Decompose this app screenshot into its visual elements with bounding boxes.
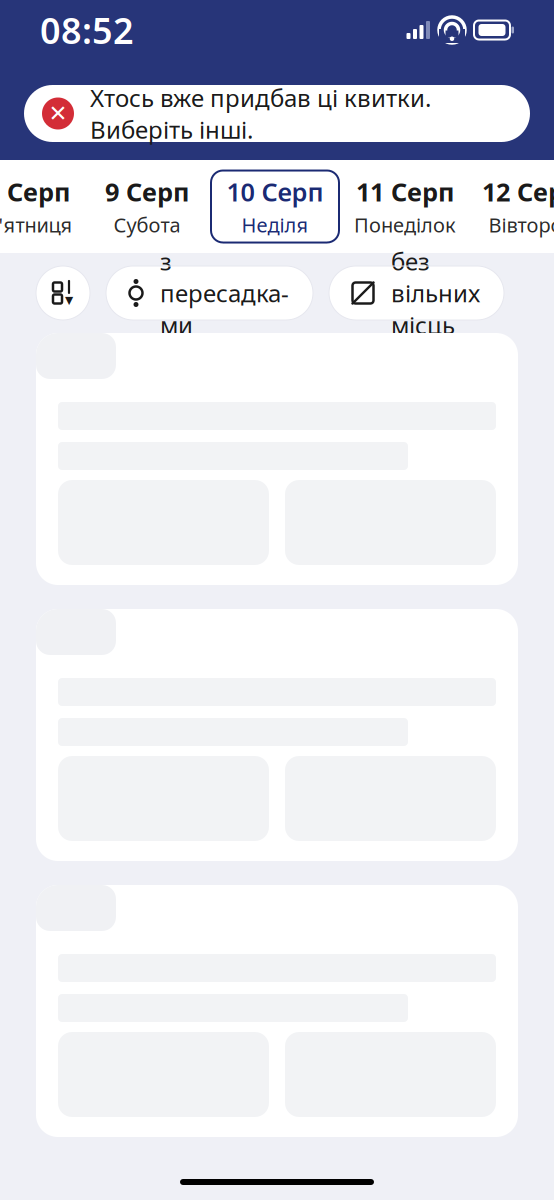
staticText: Субота [113, 211, 180, 238]
staticText: ✕ [48, 101, 67, 126]
staticText: з пересадками [160, 245, 289, 341]
button[interactable]: Сортувати [36, 266, 90, 320]
staticText: 8 Серп [0, 175, 70, 208]
staticText: П'ятниця [0, 211, 72, 238]
staticText: 9 Серп [105, 175, 189, 208]
staticText: Понеділок [354, 211, 456, 238]
button[interactable]: без вільних місць [329, 266, 504, 320]
staticText: ▼ [65, 294, 73, 306]
staticText: Неділя [241, 211, 308, 238]
staticText: 10 Серп [226, 175, 323, 208]
staticText: Вівторок [488, 211, 554, 238]
button[interactable]: 10 Серп [211, 170, 339, 242]
staticText: Хтось вже придбав ці квитки. Виберіть ін… [90, 82, 431, 145]
button[interactable]: 9 Серп [83, 170, 211, 242]
staticText: 12 Серп [482, 175, 554, 208]
button[interactable]: 8 Серп [0, 170, 83, 242]
button[interactable]: з пересадками [106, 266, 313, 320]
staticText: 11 Серп [356, 175, 454, 208]
button[interactable]: 11 Серп [339, 170, 471, 242]
button[interactable]: 12 Серп [471, 170, 554, 242]
staticText: 08:52 [40, 6, 134, 54]
staticText: без вільних місць [391, 245, 480, 341]
